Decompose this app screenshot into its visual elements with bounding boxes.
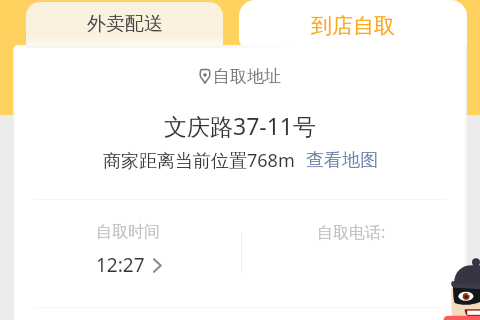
staticText: 外卖配送 bbox=[87, 12, 163, 36]
staticText: 自取时间 bbox=[96, 222, 160, 242]
staticText: 到店自取 bbox=[239, 13, 467, 39]
button[interactable]: 查看地图 bbox=[306, 149, 378, 172]
staticText: 自取电话: bbox=[317, 221, 386, 243]
button[interactable]: 自取电话: bbox=[317, 221, 386, 243]
button[interactable]: 自取时间 bbox=[96, 222, 162, 278]
staticText: 文庆路37-11号 bbox=[13, 110, 467, 141]
staticText: 12:27 bbox=[96, 252, 145, 278]
button[interactable]: 外卖配送 bbox=[26, 2, 223, 45]
button[interactable]: 到店自取 bbox=[239, 0, 467, 46]
staticText: 商家距离当前位置768m bbox=[103, 148, 295, 173]
staticText: 自取地址 bbox=[213, 66, 281, 87]
